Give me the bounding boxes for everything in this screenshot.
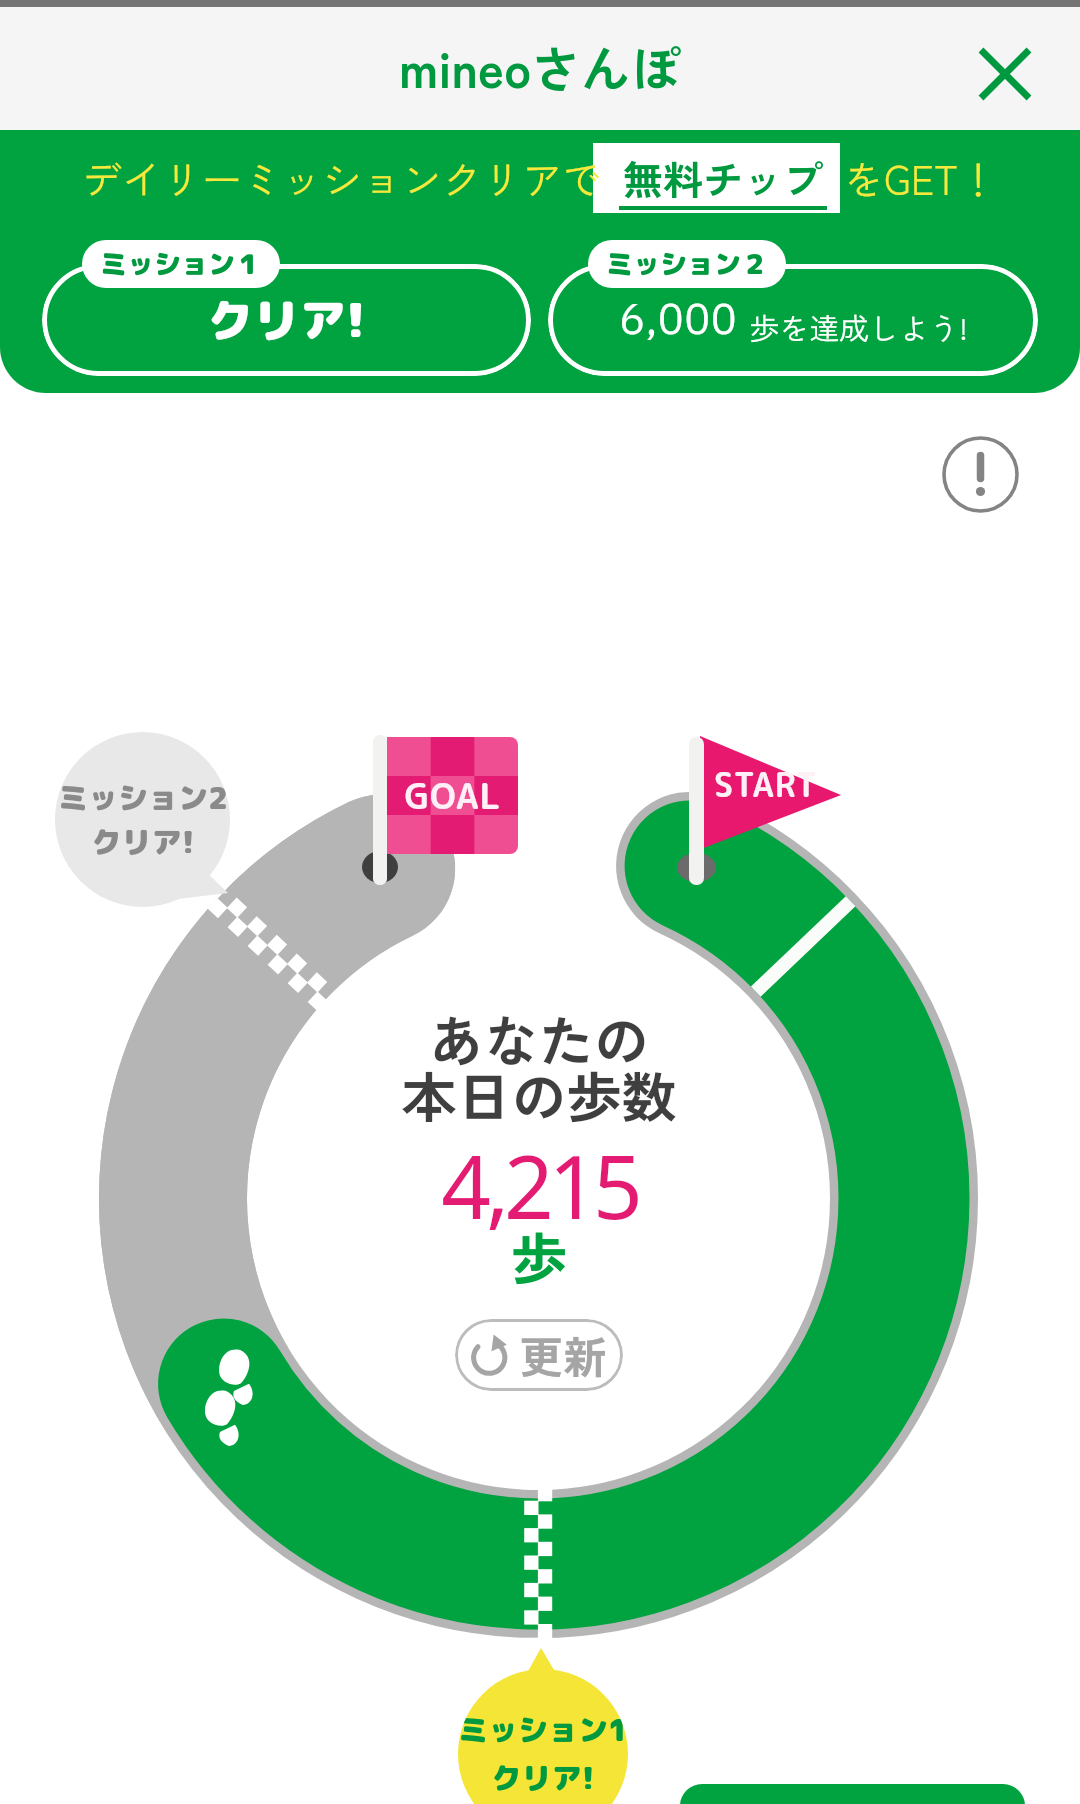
staticText: START	[714, 762, 818, 808]
button[interactable]: Open	[680, 1784, 1025, 1804]
button[interactable]: Information	[925, 419, 1035, 529]
staticText: あなたの 本日の歩数	[401, 998, 677, 1134]
staticText: mineoさんぽ	[399, 30, 681, 102]
staticText: 更新	[519, 1323, 607, 1387]
staticText: ミッション2 クリア!	[58, 777, 228, 863]
staticText: ミッション1 クリア!	[458, 1709, 628, 1799]
staticText: 無料チップ	[623, 149, 823, 207]
staticText: 6,000	[619, 289, 737, 352]
staticText: 歩	[511, 1215, 567, 1296]
button[interactable]: 6,000	[548, 264, 1038, 376]
staticText: GOAL	[404, 771, 502, 820]
staticText: ミッション２	[606, 245, 768, 283]
button[interactable]: クリア!	[42, 264, 531, 376]
button[interactable]: Close	[955, 24, 1055, 124]
button[interactable]: 更新	[455, 1319, 623, 1391]
staticText: 歩を達成しよう!	[749, 305, 968, 348]
staticText: をGET！	[844, 149, 998, 207]
staticText: 4,215	[441, 1126, 638, 1244]
staticText: デイリーミッションクリアで	[82, 149, 602, 207]
staticText: クリア!	[207, 288, 366, 352]
staticText: ミッション１	[100, 245, 262, 283]
